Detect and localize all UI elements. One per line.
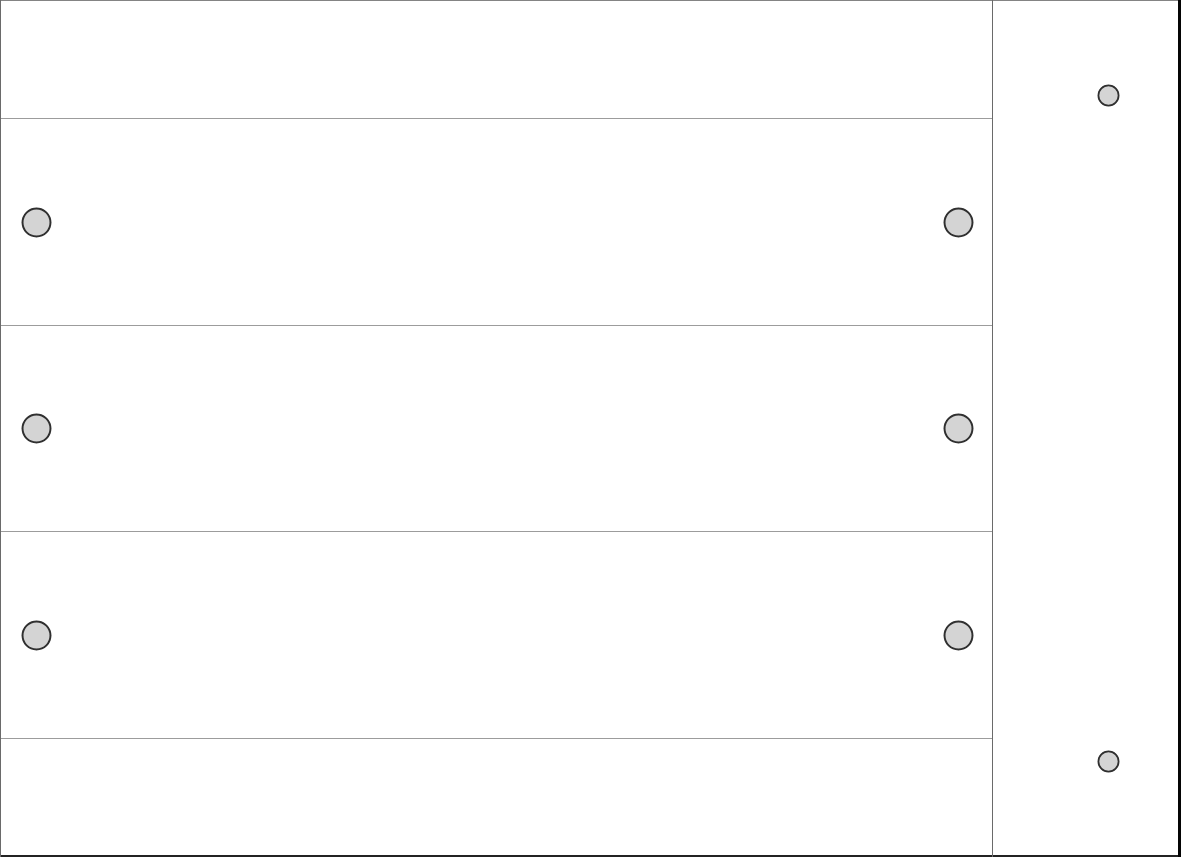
button[interactable]: Item options	[943, 620, 974, 651]
button[interactable]: Select item	[0, 326, 993, 531]
button[interactable]: Select item	[21, 413, 52, 444]
button[interactable]: Item options	[943, 413, 974, 444]
button[interactable]: Select item	[0, 119, 993, 325]
button[interactable]: Select item	[21, 207, 52, 238]
button[interactable]: Item options	[943, 207, 974, 238]
button[interactable]: Select item	[0, 532, 993, 738]
button[interactable]: Select item	[21, 620, 52, 651]
button[interactable]: Add	[1097, 84, 1120, 107]
button[interactable]: More options	[1097, 750, 1120, 773]
